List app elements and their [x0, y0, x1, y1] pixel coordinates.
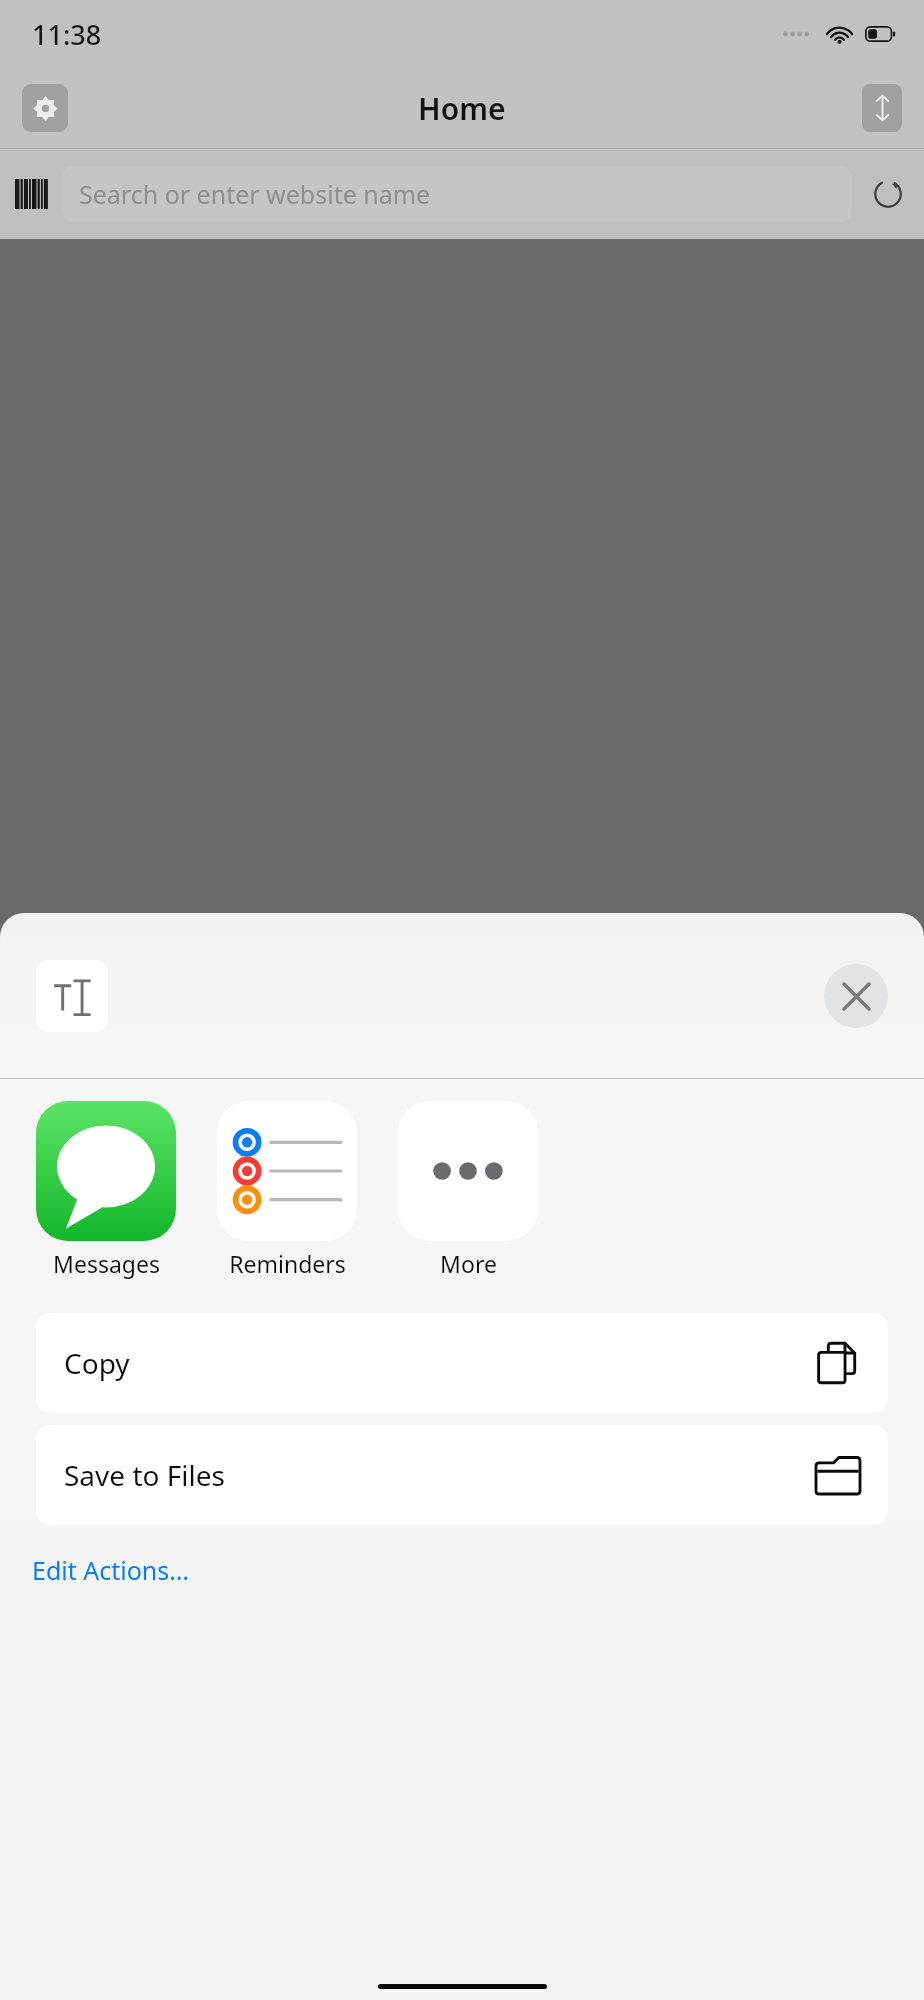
staticText: Messages: [53, 1248, 160, 1279]
button[interactable]: Search or enter website name: [62, 166, 852, 222]
button[interactable]: Copy: [36, 1313, 888, 1413]
button[interactable]: Edit Actions…: [0, 1543, 924, 1601]
button[interactable]: Save to Files: [36, 1425, 888, 1525]
button[interactable]: More: [398, 1101, 538, 1279]
staticText: Copy: [64, 1344, 130, 1382]
staticText: Home: [418, 88, 506, 129]
button[interactable]: Reader: [14, 177, 50, 211]
staticText: Save to Files: [64, 1456, 225, 1494]
button[interactable]: Reminders: [217, 1101, 357, 1279]
button[interactable]: Close: [824, 964, 888, 1028]
staticText: 11:38: [32, 16, 102, 53]
staticText: Reminders: [229, 1248, 346, 1279]
button[interactable]: Settings: [22, 84, 68, 132]
staticText: More: [440, 1248, 497, 1279]
staticText: Edit Actions…: [32, 1553, 190, 1587]
button[interactable]: Resize: [862, 84, 902, 132]
button[interactable]: Reload: [866, 172, 910, 216]
button[interactable]: Messages: [36, 1101, 176, 1279]
staticText: Search or enter website name: [79, 177, 431, 211]
button[interactable]: [36, 960, 108, 1032]
